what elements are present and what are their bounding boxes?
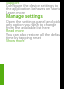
staticText: Support bbox=[6, 0, 20, 5]
staticText: Learn more bbox=[6, 10, 26, 15]
staticText: Show more bbox=[6, 38, 25, 43]
staticText: any option you wish to change bbox=[6, 22, 57, 27]
button[interactable]: Manage settings bbox=[6, 13, 43, 19]
staticText: Read more bbox=[6, 28, 24, 33]
staticText: time by tapping reset bbox=[6, 35, 42, 40]
staticText: Open the settings panel and pick bbox=[6, 19, 61, 24]
staticText: You can also restore all the defaults at… bbox=[6, 32, 64, 37]
staticText: Configure the device settings to manage … bbox=[6, 3, 64, 8]
staticText: from the available list here bbox=[6, 25, 50, 30]
staticText: the application behaves on startup bbox=[6, 6, 64, 11]
